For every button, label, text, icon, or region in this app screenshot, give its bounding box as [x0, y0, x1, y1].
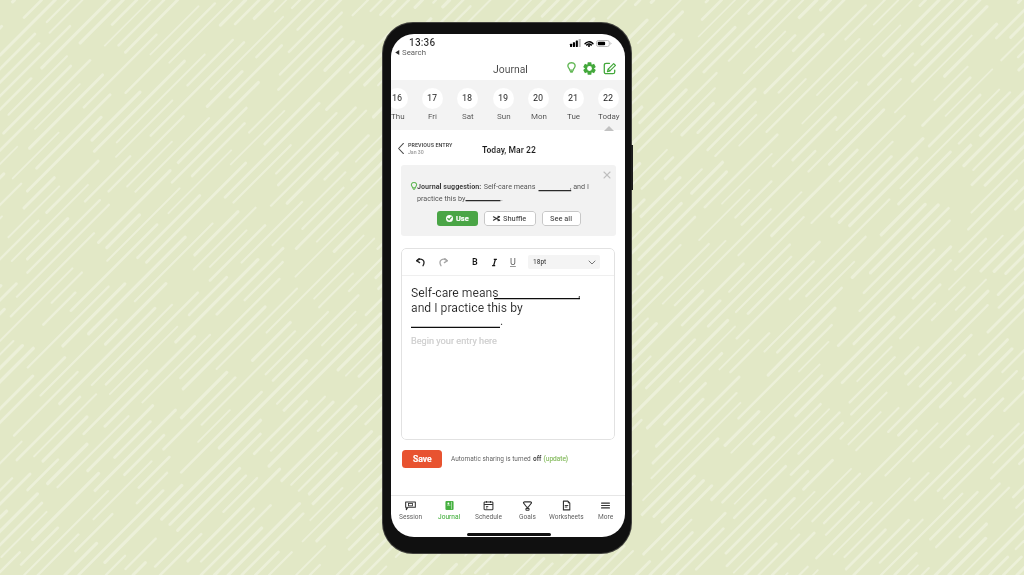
staticText: and I practice this by [411, 301, 523, 315]
staticText: , and I [570, 182, 589, 190]
staticText: Sat [462, 112, 474, 121]
staticText: 18 [462, 93, 473, 104]
staticText: See all [550, 214, 573, 223]
button[interactable]: Use [437, 211, 478, 226]
button[interactable]: Dismiss suggestion [600, 168, 614, 182]
staticText: Save [413, 454, 432, 464]
button[interactable]: Tips [563, 58, 580, 78]
staticText: Today [598, 112, 620, 121]
staticText: Automatic sharing is turned [451, 455, 533, 463]
staticText: Journal [438, 513, 461, 521]
button[interactable]: 17 [415, 80, 450, 130]
button[interactable]: Search [395, 48, 426, 57]
button[interactable]: 21 [556, 80, 591, 130]
staticText: 22 [603, 93, 614, 104]
staticText: Worksheets [549, 513, 584, 521]
button[interactable]: Undo [413, 254, 428, 269]
staticText: Tue [567, 112, 581, 121]
staticText: 19 [498, 93, 509, 104]
button[interactable]: Journal [430, 496, 469, 526]
button[interactable]: 22 [591, 80, 625, 130]
button[interactable]: Settings [581, 58, 598, 78]
staticText: 17 [427, 93, 438, 104]
button[interactable]: Goals [508, 496, 547, 526]
staticText: Mon [531, 112, 547, 121]
staticText: 21 [568, 93, 579, 104]
staticText: practice this by [417, 194, 466, 202]
button[interactable]: Worksheets [547, 496, 586, 526]
staticText: B [472, 257, 478, 268]
button[interactable]: Schedule [469, 496, 508, 526]
staticText: Fri [428, 112, 437, 121]
staticText: Schedule [475, 513, 502, 521]
staticText: (update) [542, 455, 569, 463]
staticText: Session [399, 513, 423, 521]
staticText: Use [456, 214, 469, 223]
staticText: U [510, 257, 516, 268]
button[interactable]: 19 [486, 80, 521, 130]
staticText: Goals [519, 513, 536, 521]
button[interactable]: B [468, 255, 482, 269]
button[interactable]: New entry [601, 58, 618, 78]
staticText: 20 [533, 93, 544, 104]
button[interactable]: Redo [435, 254, 450, 269]
staticText: 18pt [533, 258, 547, 266]
staticText: Jan 30 [408, 149, 424, 155]
staticText: More [598, 513, 614, 521]
button[interactable]: PREVIOUS ENTRY [398, 142, 453, 155]
staticText: Shuffle [503, 214, 527, 223]
button[interactable]: See all [542, 211, 581, 226]
button[interactable]: Save [402, 450, 442, 468]
button[interactable]: 18pt [528, 255, 600, 269]
button[interactable]: More [586, 496, 625, 526]
staticText: Begin your entry here [411, 335, 497, 346]
button[interactable]: 18 [450, 80, 485, 130]
staticText: off [533, 455, 542, 463]
staticText: Today, Mar 22 [482, 145, 536, 155]
staticText: , [578, 286, 581, 300]
button[interactable]: Shuffle [484, 211, 536, 226]
button[interactable] [487, 255, 501, 269]
button[interactable]: U [506, 255, 520, 269]
button[interactable]: 20 [521, 80, 556, 130]
staticText: . [500, 314, 504, 328]
button[interactable]: 16 [391, 80, 415, 130]
staticText: Thu [391, 112, 405, 121]
staticText: Search [402, 48, 426, 57]
staticText: . [501, 194, 503, 202]
staticText: Self-care means [411, 286, 499, 300]
button[interactable]: Session [391, 496, 430, 526]
staticText: PREVIOUS ENTRY [408, 142, 453, 148]
staticText: Journal suggestion: [417, 182, 482, 190]
staticText: 13:36 [409, 37, 436, 49]
staticText: Self-care means [482, 182, 536, 190]
staticText: Sun [497, 112, 511, 121]
staticText: Journal [493, 63, 528, 75]
staticText: 16 [392, 93, 403, 104]
